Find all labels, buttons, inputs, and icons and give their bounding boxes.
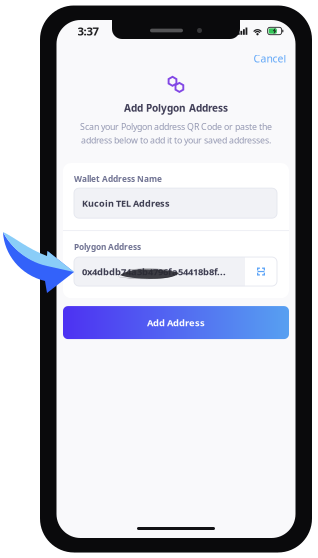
staticText: Cancel xyxy=(253,51,286,66)
staticText: Add Polygon Address xyxy=(124,101,228,115)
button[interactable]: Scan QR code xyxy=(245,257,277,286)
staticText: Polygon Address xyxy=(74,241,141,252)
staticText: Scan your Polygon address QR Code or pas… xyxy=(80,121,272,133)
staticText: Wallet Address Name xyxy=(74,173,162,184)
button[interactable]: Cancel xyxy=(244,40,295,70)
staticText: 3:37 xyxy=(77,23,98,39)
staticText: Kucoin TEL Address xyxy=(82,197,170,209)
staticText: Add Address xyxy=(147,316,205,329)
staticText: address below to add it to your saved ad… xyxy=(81,134,271,146)
staticText: 0x4dbdb74a3b4796fa54418b8f... xyxy=(82,265,226,278)
button[interactable]: Add Address xyxy=(63,306,289,339)
